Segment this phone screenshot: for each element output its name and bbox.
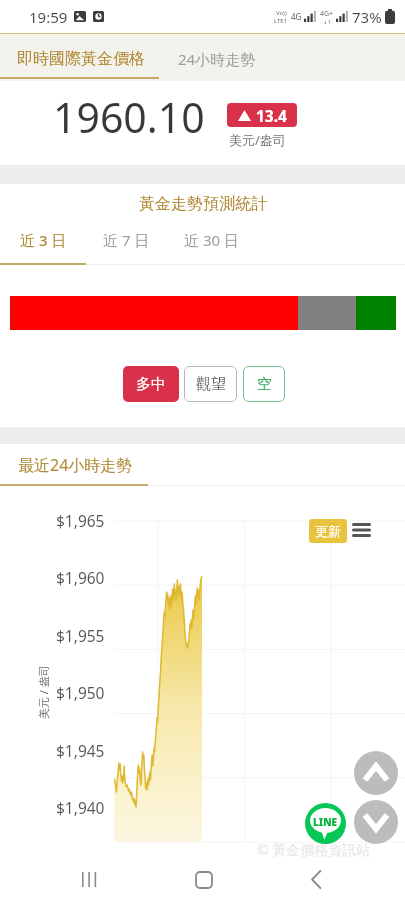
staticText: $1,965	[56, 510, 105, 531]
button[interactable]: Scroll to bottom	[354, 800, 398, 844]
button[interactable]: 空	[243, 366, 285, 402]
staticText: 黃金走勢預測統計	[139, 194, 267, 214]
button[interactable]: 觀望	[184, 366, 237, 402]
staticText: 美元/盎司	[229, 131, 286, 149]
staticText: $1,945	[56, 740, 105, 761]
staticText: 美元 / 盎司	[36, 665, 51, 719]
button[interactable]: Recents	[65, 859, 113, 900]
staticText: 更新	[315, 523, 341, 539]
staticText: 最近24小時走勢	[18, 454, 133, 476]
button[interactable]: Home	[180, 859, 228, 900]
staticText: $1,955	[56, 625, 105, 646]
button[interactable]: Share on LINE	[305, 803, 346, 844]
button[interactable]: 近 30 日	[166, 224, 256, 256]
staticText: $1,940	[56, 797, 105, 818]
staticText: 觀望	[196, 375, 226, 394]
staticText: 即時國際黃金價格	[17, 49, 145, 69]
button[interactable]: 即時國際黃金價格	[0, 39, 162, 79]
staticText: 24小時走勢	[178, 49, 256, 69]
staticText: 近 30 日	[184, 230, 239, 250]
button[interactable]: 更新	[309, 519, 347, 543]
staticText: 空	[257, 375, 272, 394]
staticText: 13.4	[256, 105, 287, 126]
button[interactable]: Scroll to top	[354, 751, 398, 795]
staticText: 19:59	[29, 7, 68, 27]
button[interactable]: Back	[292, 859, 340, 900]
button[interactable]: 近 3 日	[0, 224, 86, 256]
staticText: © 黃金價格資訊站	[257, 840, 371, 859]
staticText: 1960.10	[53, 89, 205, 145]
staticText: 4G+	[320, 9, 334, 19]
staticText: 近 3 日	[20, 230, 67, 250]
staticText: ↓↑	[323, 19, 332, 25]
staticText: 73%	[352, 7, 382, 27]
staticText: 多中	[136, 375, 166, 394]
staticText: Vo))	[276, 9, 287, 17]
button[interactable]: 24小時走勢	[162, 39, 272, 79]
button[interactable]: 多中	[123, 366, 179, 402]
staticText: $1,960	[56, 567, 105, 588]
staticText: 4G	[291, 11, 302, 22]
button[interactable]: Menu	[352, 523, 371, 537]
button[interactable]: 近 7 日	[86, 224, 166, 256]
staticText: $1,950	[56, 682, 105, 703]
staticText: 近 7 日	[103, 230, 150, 250]
staticText: LINE	[313, 815, 338, 829]
staticText: LTE1	[274, 17, 288, 25]
